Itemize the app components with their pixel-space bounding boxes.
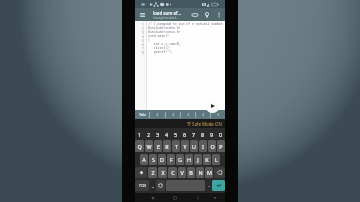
button[interactable] xyxy=(156,180,165,191)
button[interactable] xyxy=(214,167,225,178)
button[interactable]: 6 xyxy=(180,128,189,140)
button[interactable]: H xyxy=(185,154,193,165)
button[interactable]: R xyxy=(163,140,171,152)
button[interactable]: D xyxy=(158,154,166,165)
button[interactable]: C xyxy=(168,167,177,178)
staticText: 4 xyxy=(165,131,169,138)
button[interactable]: 3 xyxy=(153,128,162,140)
button[interactable]: Y xyxy=(181,140,189,152)
button[interactable]: T xyxy=(172,140,180,152)
staticText: O xyxy=(210,143,215,150)
button[interactable]: S xyxy=(149,154,157,165)
button[interactable]: X xyxy=(158,167,167,178)
staticText: 1 xyxy=(138,131,142,138)
staticText: 7 xyxy=(142,46,144,50)
button[interactable]: Back xyxy=(193,193,203,202)
button[interactable]: V xyxy=(178,167,186,178)
button[interactable]: Menu xyxy=(210,193,220,202)
button[interactable]: L xyxy=(212,154,220,165)
button[interactable]: ?123 xyxy=(135,180,149,191)
staticText: Safe Mode ON xyxy=(192,121,222,127)
button[interactable]: U xyxy=(190,140,198,152)
staticText: W xyxy=(146,143,152,150)
button[interactable]: 9 xyxy=(207,128,216,140)
staticText: , xyxy=(152,183,154,189)
staticText: H xyxy=(187,156,191,163)
button[interactable]: 1 xyxy=(135,128,144,140)
staticText: { xyxy=(148,38,150,42)
staticText: 0 xyxy=(219,131,223,138)
staticText: E xyxy=(157,143,160,150)
staticText: Y xyxy=(183,143,187,150)
button[interactable]: P xyxy=(217,140,225,152)
staticText: clrscr(); xyxy=(148,46,171,50)
button[interactable]: N xyxy=(196,167,204,178)
button[interactable]: Key 1 xyxy=(166,110,180,119)
button[interactable]: . xyxy=(206,180,211,191)
staticText: . xyxy=(208,183,210,189)
staticText: Tab xyxy=(139,112,146,117)
staticText: printf("); xyxy=(148,50,173,54)
button[interactable]: Key 2 xyxy=(181,110,195,119)
staticText: R xyxy=(165,143,169,150)
button[interactable]: Run xyxy=(205,98,220,113)
staticText: M xyxy=(207,169,212,176)
staticText: Q xyxy=(137,143,142,150)
staticText: Z xyxy=(151,169,155,176)
button[interactable]: 8 xyxy=(198,128,207,140)
staticText: B xyxy=(189,169,193,176)
button[interactable]: A xyxy=(140,154,148,165)
staticText: 8 xyxy=(142,50,144,54)
button[interactable]: O xyxy=(208,140,216,152)
button[interactable]: M xyxy=(205,167,213,178)
button[interactable]: 2 xyxy=(144,128,153,140)
staticText: 1 xyxy=(142,22,144,26)
staticText: int n,i,sum=0; xyxy=(148,42,181,46)
button[interactable]: G xyxy=(176,154,184,165)
button[interactable]: E xyxy=(154,140,162,152)
button[interactable]: 4 xyxy=(162,128,171,140)
staticText: I xyxy=(202,143,204,150)
button[interactable]: F xyxy=(167,154,175,165)
button[interactable]: 0 xyxy=(216,128,225,140)
button[interactable]: 5 xyxy=(171,128,180,140)
staticText: C xyxy=(171,169,175,176)
button[interactable]: B xyxy=(187,167,195,178)
staticText: J xyxy=(197,156,199,163)
staticText: // C program to sum of n natural number xyxy=(148,22,223,26)
button[interactable]: Save xyxy=(189,8,201,21)
staticText: #include<conio.h> xyxy=(148,30,181,34)
staticText: K xyxy=(205,156,209,163)
staticText: U xyxy=(192,143,196,150)
button[interactable]: Q xyxy=(135,140,144,152)
button[interactable]: Key 0 xyxy=(150,110,165,119)
button[interactable]: Key 3 xyxy=(196,110,210,119)
button[interactable]: 7 xyxy=(189,128,198,140)
staticText: V xyxy=(180,169,184,176)
staticText: 3 xyxy=(142,30,144,34)
button[interactable]: Hint xyxy=(201,8,213,21)
button[interactable]: Recents xyxy=(148,193,158,202)
button[interactable]: Key 4 xyxy=(211,110,225,119)
staticText: 4 xyxy=(142,34,144,38)
button[interactable]: K xyxy=(203,154,211,165)
button[interactable]: More options xyxy=(213,8,225,21)
staticText: 2 xyxy=(147,131,151,138)
button[interactable]: Open navigation menu xyxy=(135,8,149,21)
button[interactable]: I xyxy=(199,140,207,152)
button[interactable]: Tab xyxy=(135,110,149,119)
button[interactable] xyxy=(135,167,147,178)
button[interactable]: Home xyxy=(170,193,180,202)
button[interactable]: W xyxy=(145,140,153,152)
button[interactable] xyxy=(212,180,225,191)
staticText: D xyxy=(160,156,164,163)
button[interactable]: Z xyxy=(148,167,157,178)
staticText: 5 xyxy=(142,38,144,42)
button[interactable]: , xyxy=(150,180,155,191)
staticText: T xyxy=(175,143,178,150)
staticText: P xyxy=(219,143,223,150)
staticText: 5 xyxy=(174,131,178,138)
staticText: S xyxy=(152,156,155,163)
button[interactable]: J xyxy=(194,154,202,165)
